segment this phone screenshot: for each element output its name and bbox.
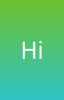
staticText: Hi: [20, 35, 43, 65]
